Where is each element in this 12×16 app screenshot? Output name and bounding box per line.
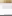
button[interactable]: Share (10, 1, 11, 2)
button[interactable] (2, 6, 12, 7)
button[interactable] (2, 7, 12, 8)
button[interactable] (2, 8, 12, 9)
